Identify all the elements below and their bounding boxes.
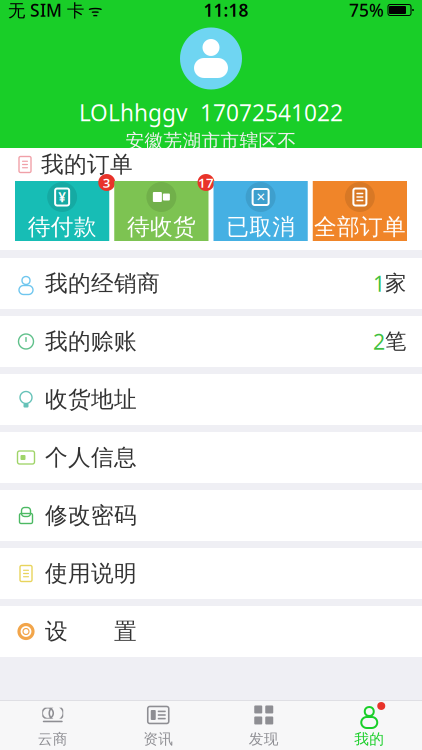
staticText: 1 (373, 269, 385, 298)
staticText: 发现 (249, 730, 279, 748)
button[interactable]: 资讯 (105, 701, 211, 750)
staticText: 无 SIM 卡 (8, 0, 84, 21)
staticText: 收货地址 (45, 386, 137, 413)
staticText: 待收货 (127, 213, 196, 241)
staticText: 待付款 (28, 213, 97, 241)
button[interactable]: ✕ (213, 181, 308, 241)
staticText: 安徽芜湖市市辖区不 (125, 130, 296, 152)
staticText: 我的经销商 (45, 270, 160, 297)
staticText: 3 (103, 174, 111, 191)
staticText: 云商 (38, 730, 68, 748)
staticText: 我的赊账 (45, 328, 137, 355)
button[interactable]: 修改密码 (0, 490, 422, 541)
staticText: 17 (198, 174, 214, 191)
button[interactable]: 我的 (316, 701, 422, 750)
staticText: 使用说明 (45, 560, 137, 587)
button[interactable]: 使用说明 (0, 548, 422, 599)
staticText: 已取消 (226, 213, 295, 241)
staticText: 我的订单 (41, 151, 133, 178)
staticText: 我的 (354, 730, 384, 748)
staticText: ¥ (58, 188, 66, 206)
staticText: 全部订单 (314, 213, 406, 241)
button[interactable]: 云商 (0, 701, 105, 750)
staticText: 2 (373, 327, 385, 356)
button[interactable]: 发现 (211, 701, 316, 750)
staticText: ✕ (256, 190, 266, 204)
button[interactable]: 全部订单 (313, 181, 407, 241)
staticText: LOLhhggv 17072541022 (79, 97, 343, 128)
staticText: 75% (349, 0, 384, 21)
staticText: ᯤ (84, 0, 103, 21)
staticText: 笔 (385, 328, 406, 355)
button[interactable]: 个人信息 (0, 432, 422, 483)
staticText: 家 (385, 270, 406, 297)
staticText: 资讯 (143, 730, 173, 748)
button[interactable]: 设 置 (0, 606, 422, 657)
button[interactable]: 收货地址 (0, 374, 422, 425)
staticText: 11:18 (203, 0, 248, 21)
button[interactable]: ¥ (15, 181, 109, 241)
button[interactable]: 我的赊账 (0, 316, 422, 367)
button[interactable]: 我的经销商 (0, 258, 422, 309)
button[interactable]: 待收货 (114, 181, 208, 241)
staticText: 个人信息 (45, 444, 137, 471)
staticText: 设 置 (45, 618, 137, 645)
staticText: 修改密码 (45, 502, 137, 529)
